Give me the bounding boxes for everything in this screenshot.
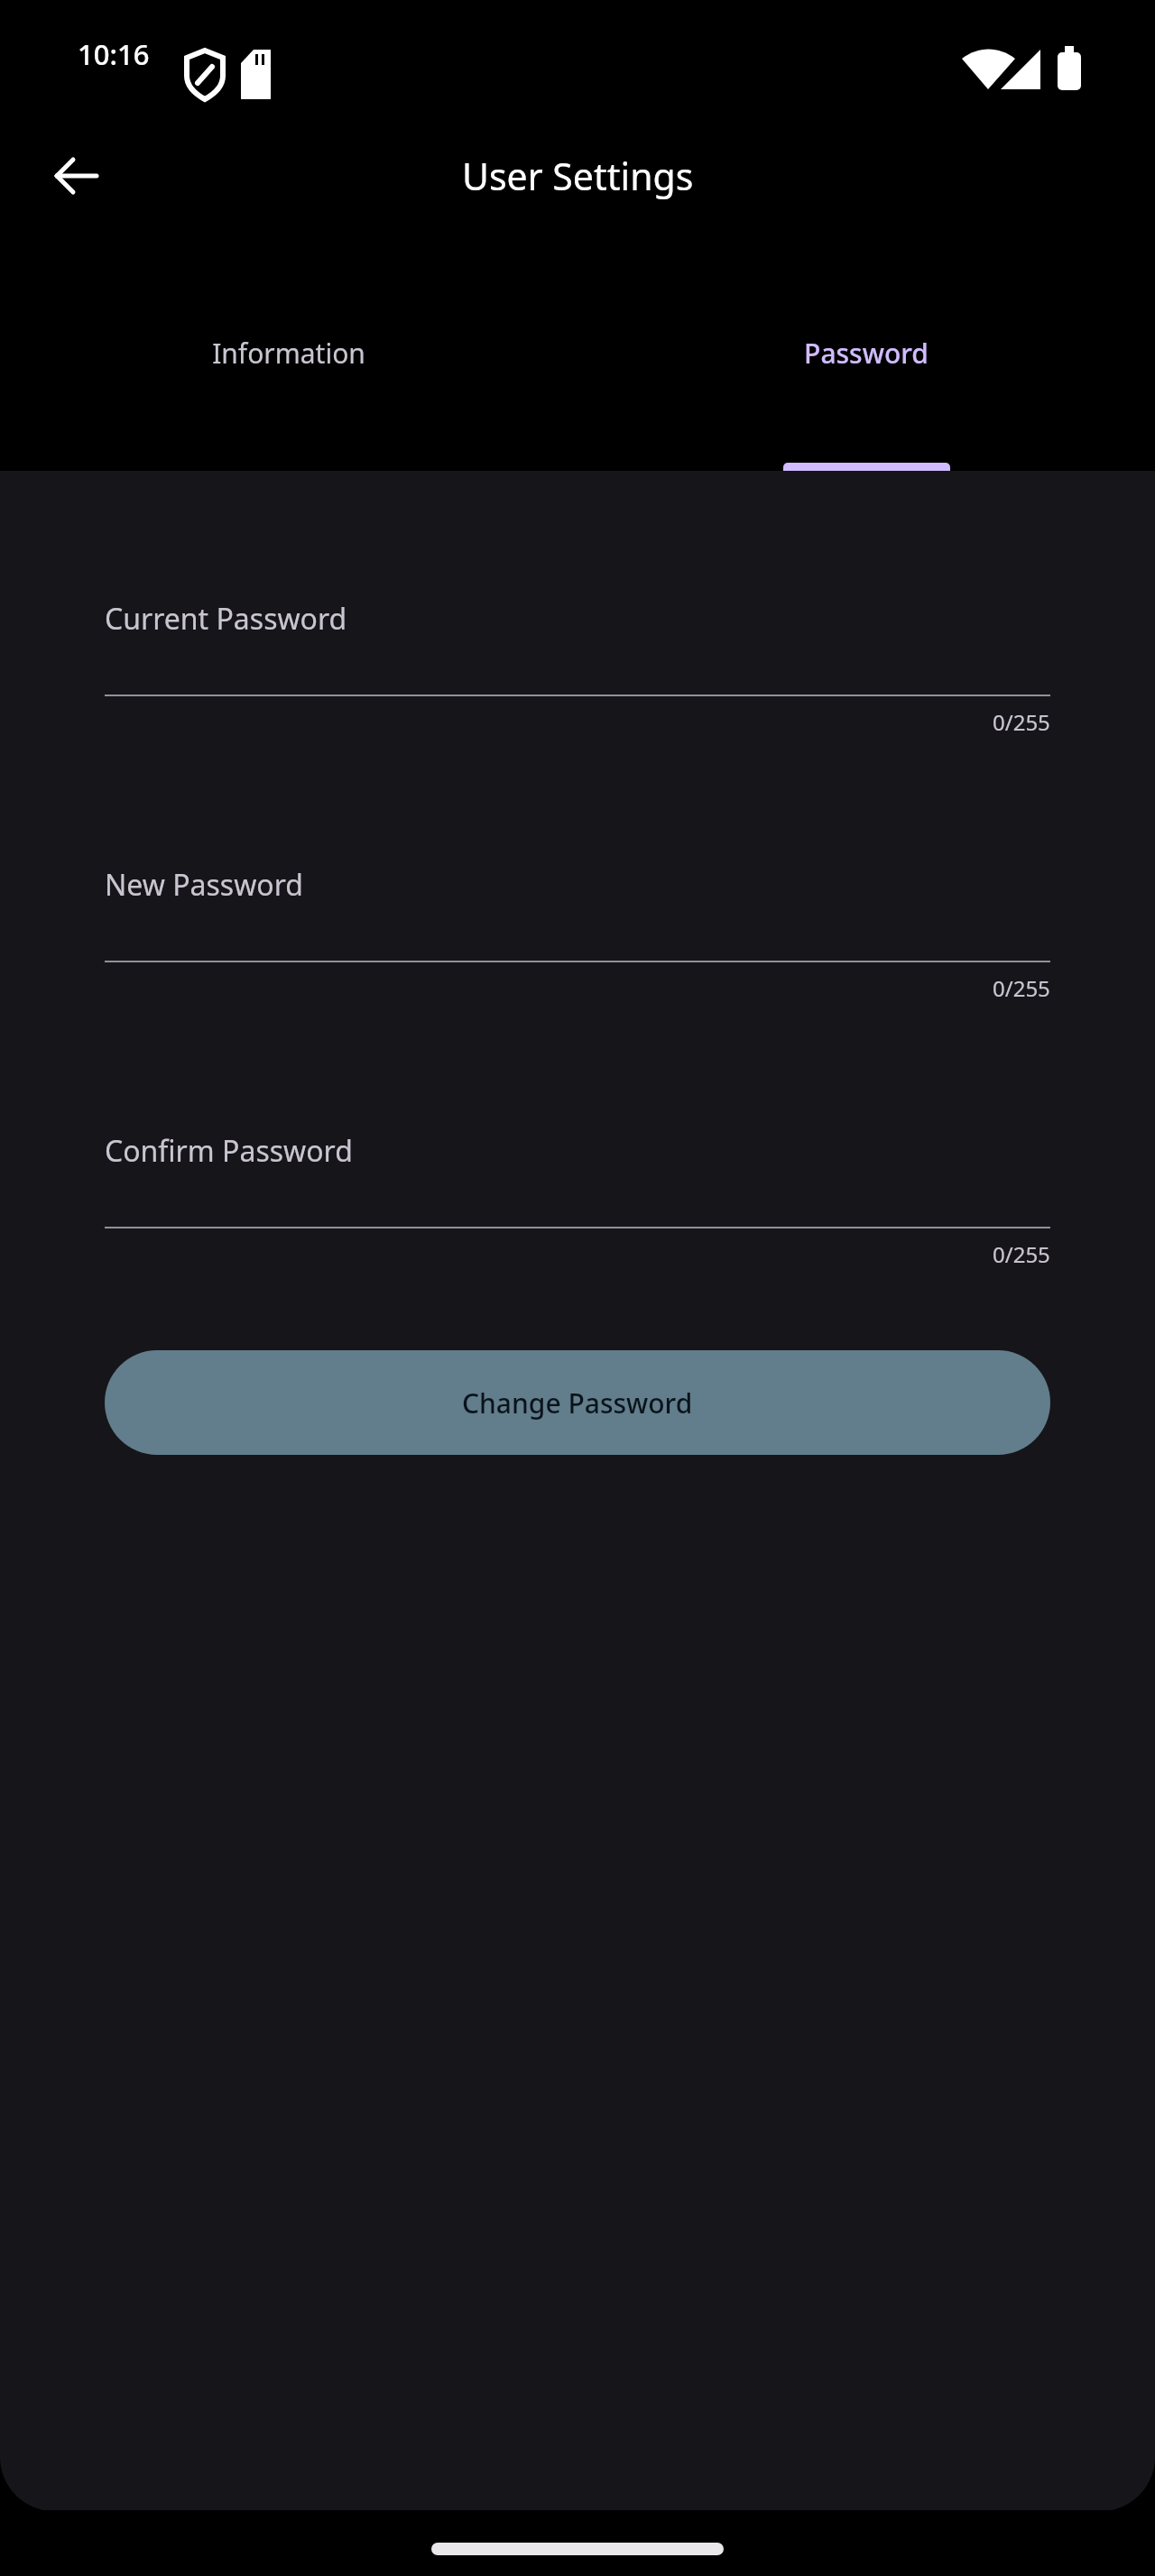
staticText: Confirm Password: [105, 1131, 353, 1171]
staticText: 0/255: [993, 1239, 1050, 1269]
staticText: Password: [804, 335, 929, 372]
staticText: Change Password: [462, 1385, 693, 1421]
button[interactable]: Information: [0, 244, 577, 471]
staticText: Information: [212, 335, 365, 372]
staticText: 0/255: [993, 973, 1050, 1003]
button[interactable]: Change Password: [105, 1350, 1050, 1455]
staticText: Current Password: [105, 599, 347, 639]
button[interactable]: Password: [577, 244, 1155, 471]
staticText: 0/255: [993, 707, 1050, 737]
staticText: New Password: [105, 865, 303, 905]
button[interactable]: Current Password: [105, 599, 1050, 737]
staticText: User Settings: [462, 151, 694, 201]
button[interactable]: Back: [36, 135, 117, 216]
button[interactable]: Confirm Password: [105, 1131, 1050, 1269]
button[interactable]: New Password: [105, 865, 1050, 1003]
staticText: 10:16: [78, 35, 150, 73]
